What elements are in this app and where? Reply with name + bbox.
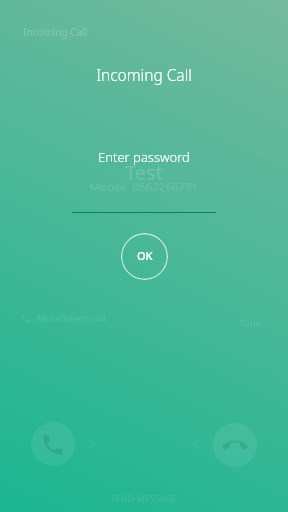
staticText: Time	[239, 317, 261, 330]
button[interactable]: Decline call	[213, 423, 257, 467]
staticText: Mute/reject call	[37, 312, 106, 325]
staticText: Incoming Call	[23, 25, 88, 39]
staticText: Incoming Call	[0, 64, 288, 85]
staticText: Mobile 0562266781	[0, 179, 288, 195]
button[interactable]: Answer call	[31, 422, 75, 466]
staticText: OK	[137, 248, 153, 263]
button[interactable]: OK	[121, 233, 168, 280]
staticText: SEND MESSAGE	[0, 493, 288, 505]
staticText: Test	[0, 159, 288, 186]
button[interactable]: Mute/reject call	[21, 312, 106, 325]
staticText: Enter password	[0, 148, 288, 166]
